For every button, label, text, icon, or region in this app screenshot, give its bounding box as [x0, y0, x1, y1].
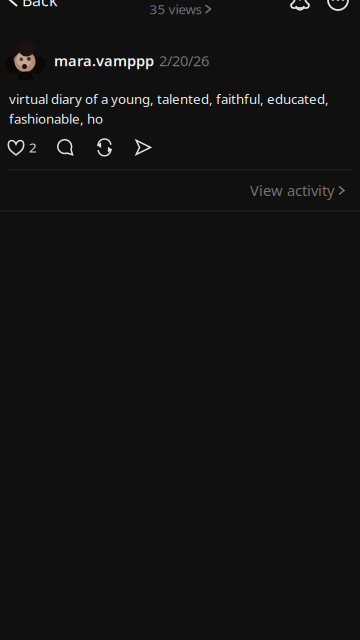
- staticText: 2/20/26: [159, 51, 209, 70]
- staticText: 35 views: [149, 0, 201, 18]
- button[interactable]: Notifications: [291, 0, 309, 13]
- button[interactable]: 35 views: [149, 1, 210, 17]
- staticText: Back: [22, 0, 58, 11]
- button[interactable]: View activity: [250, 170, 360, 210]
- staticText: mara.vamppp: [54, 51, 154, 70]
- button[interactable]: More options: [328, 0, 348, 13]
- button[interactable]: Repost: [85, 133, 124, 161]
- button[interactable]: Share: [124, 133, 162, 161]
- staticText: View activity: [250, 181, 334, 200]
- button[interactable]: Back: [0, 0, 66, 13]
- staticText: virtual diary of a young, talented, fait…: [9, 90, 329, 127]
- button[interactable]: 2: [0, 133, 46, 161]
- staticText: 2: [29, 139, 37, 156]
- button[interactable]: Reply: [46, 133, 85, 161]
